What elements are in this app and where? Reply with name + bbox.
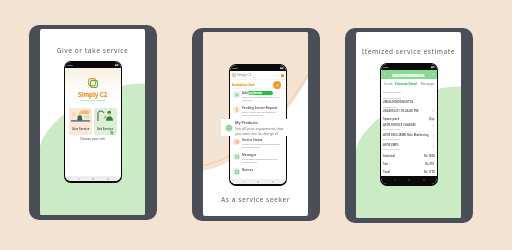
button[interactable]: Back — [383, 73, 386, 76]
button[interactable]: Log Service Request — [248, 91, 273, 95]
button[interactable]: Quote — [384, 82, 393, 86]
staticText: Qty — [429, 117, 435, 121]
button[interactable]: Get Service — [94, 108, 117, 135]
staticText: Messages exchanged with the Initiative L… — [242, 157, 278, 164]
staticText: Service Request ID — [383, 97, 402, 100]
staticText: See all your equipments that you own/ ar… — [235, 126, 284, 136]
button[interactable]: AFDR 8MPS — [383, 143, 435, 151]
staticText: 10:30 — [383, 66, 389, 69]
staticText: See all open service requests from Initi… — [242, 110, 276, 117]
staticText: 1 — [433, 125, 435, 129]
button[interactable]: Give Service — [69, 108, 92, 135]
staticText: AFDR 8002 28MB Hole Machining — [383, 133, 429, 137]
staticText: ▮▮▮ — [280, 67, 284, 69]
staticText: 2NEG2VND0NSGT36 — [383, 100, 414, 104]
staticText: Add Service Request — [242, 91, 272, 95]
button[interactable]: My Products — [221, 119, 289, 136]
staticText: Messages — [242, 153, 257, 157]
staticText: Give or take service — [40, 46, 145, 55]
staticText: Simply C2 — [237, 73, 252, 77]
staticText: □ — [432, 109, 435, 112]
staticText: Give Service — [72, 127, 90, 131]
staticText: Notices — [242, 168, 253, 172]
button[interactable]: Service Status — [233, 138, 284, 149]
staticText: Initiative List — [232, 82, 255, 87]
button[interactable]: More — [432, 73, 435, 76]
staticText: Rs.700 Tax (18%) — [383, 148, 400, 151]
staticText: Itemized service estimate — [356, 47, 461, 56]
other: Back — [394, 179, 396, 181]
button[interactable]: Messages — [421, 82, 435, 86]
staticText: Rs.270 — [425, 162, 435, 166]
staticText: AFDR 8MPS — [383, 143, 399, 147]
staticText: Estimate Detail — [383, 90, 401, 93]
staticText: Rs.1500 — [424, 154, 435, 158]
other: Back — [78, 178, 80, 180]
staticText: 1 — [433, 135, 435, 139]
staticText: Spare part — [383, 117, 400, 121]
button[interactable]: Pending Service Request — [233, 106, 284, 117]
button[interactable]: Add Service Request — [233, 91, 284, 102]
staticText: Choose your role — [80, 137, 106, 141]
staticText: ▮▮▮ — [115, 64, 119, 66]
other: My Products — [225, 124, 233, 132]
staticText: Total — [383, 170, 391, 174]
staticText: Service Status — [242, 138, 263, 142]
staticText: Rs.700 Tax (18%) — [383, 138, 400, 141]
staticText: Simply C2 — [78, 90, 108, 98]
staticText: Subtotal — [383, 154, 396, 158]
staticText: My Products — [235, 120, 258, 125]
staticText: Rs.1770 — [424, 170, 435, 174]
button[interactable]: AFDR SERVICE CHARGES — [383, 123, 435, 131]
button[interactable]: Estimate Detail — [395, 82, 418, 86]
other: Back — [243, 181, 245, 183]
staticText: History of all services performed by Ini… — [242, 142, 281, 149]
staticText: Customer to Consumer — [80, 99, 106, 102]
staticText: 10:30 — [67, 64, 73, 67]
staticText: 2024/05/21 10:24:45 PM — [383, 109, 419, 113]
staticText: AFDR SERVICE CHARGES — [383, 123, 416, 127]
staticText: Pending Service Request — [242, 106, 278, 110]
staticText: Log Service Request — [248, 91, 273, 95]
staticText: As a service seeker — [203, 195, 308, 204]
staticText: Rs.100 Tax (18%) — [383, 128, 400, 131]
staticText: Date (dd/mm) — [383, 106, 397, 109]
staticText: Tax — [383, 162, 388, 166]
staticText: 10:30 — [232, 67, 238, 70]
staticText: 1 — [433, 145, 435, 149]
button[interactable]: Add — [273, 81, 281, 89]
staticText: Select an initiative and add your provid… — [242, 95, 280, 102]
button[interactable]: Notices — [233, 168, 284, 175]
button[interactable]: Messages — [233, 153, 284, 164]
button[interactable]: AFDR 8002 28MB Hole Machining — [383, 133, 435, 141]
staticText: Get Service — [97, 127, 114, 131]
staticText: ▮▮▮ — [431, 66, 435, 68]
staticText: 2NEG2VND0NSGT36 — [392, 73, 425, 77]
